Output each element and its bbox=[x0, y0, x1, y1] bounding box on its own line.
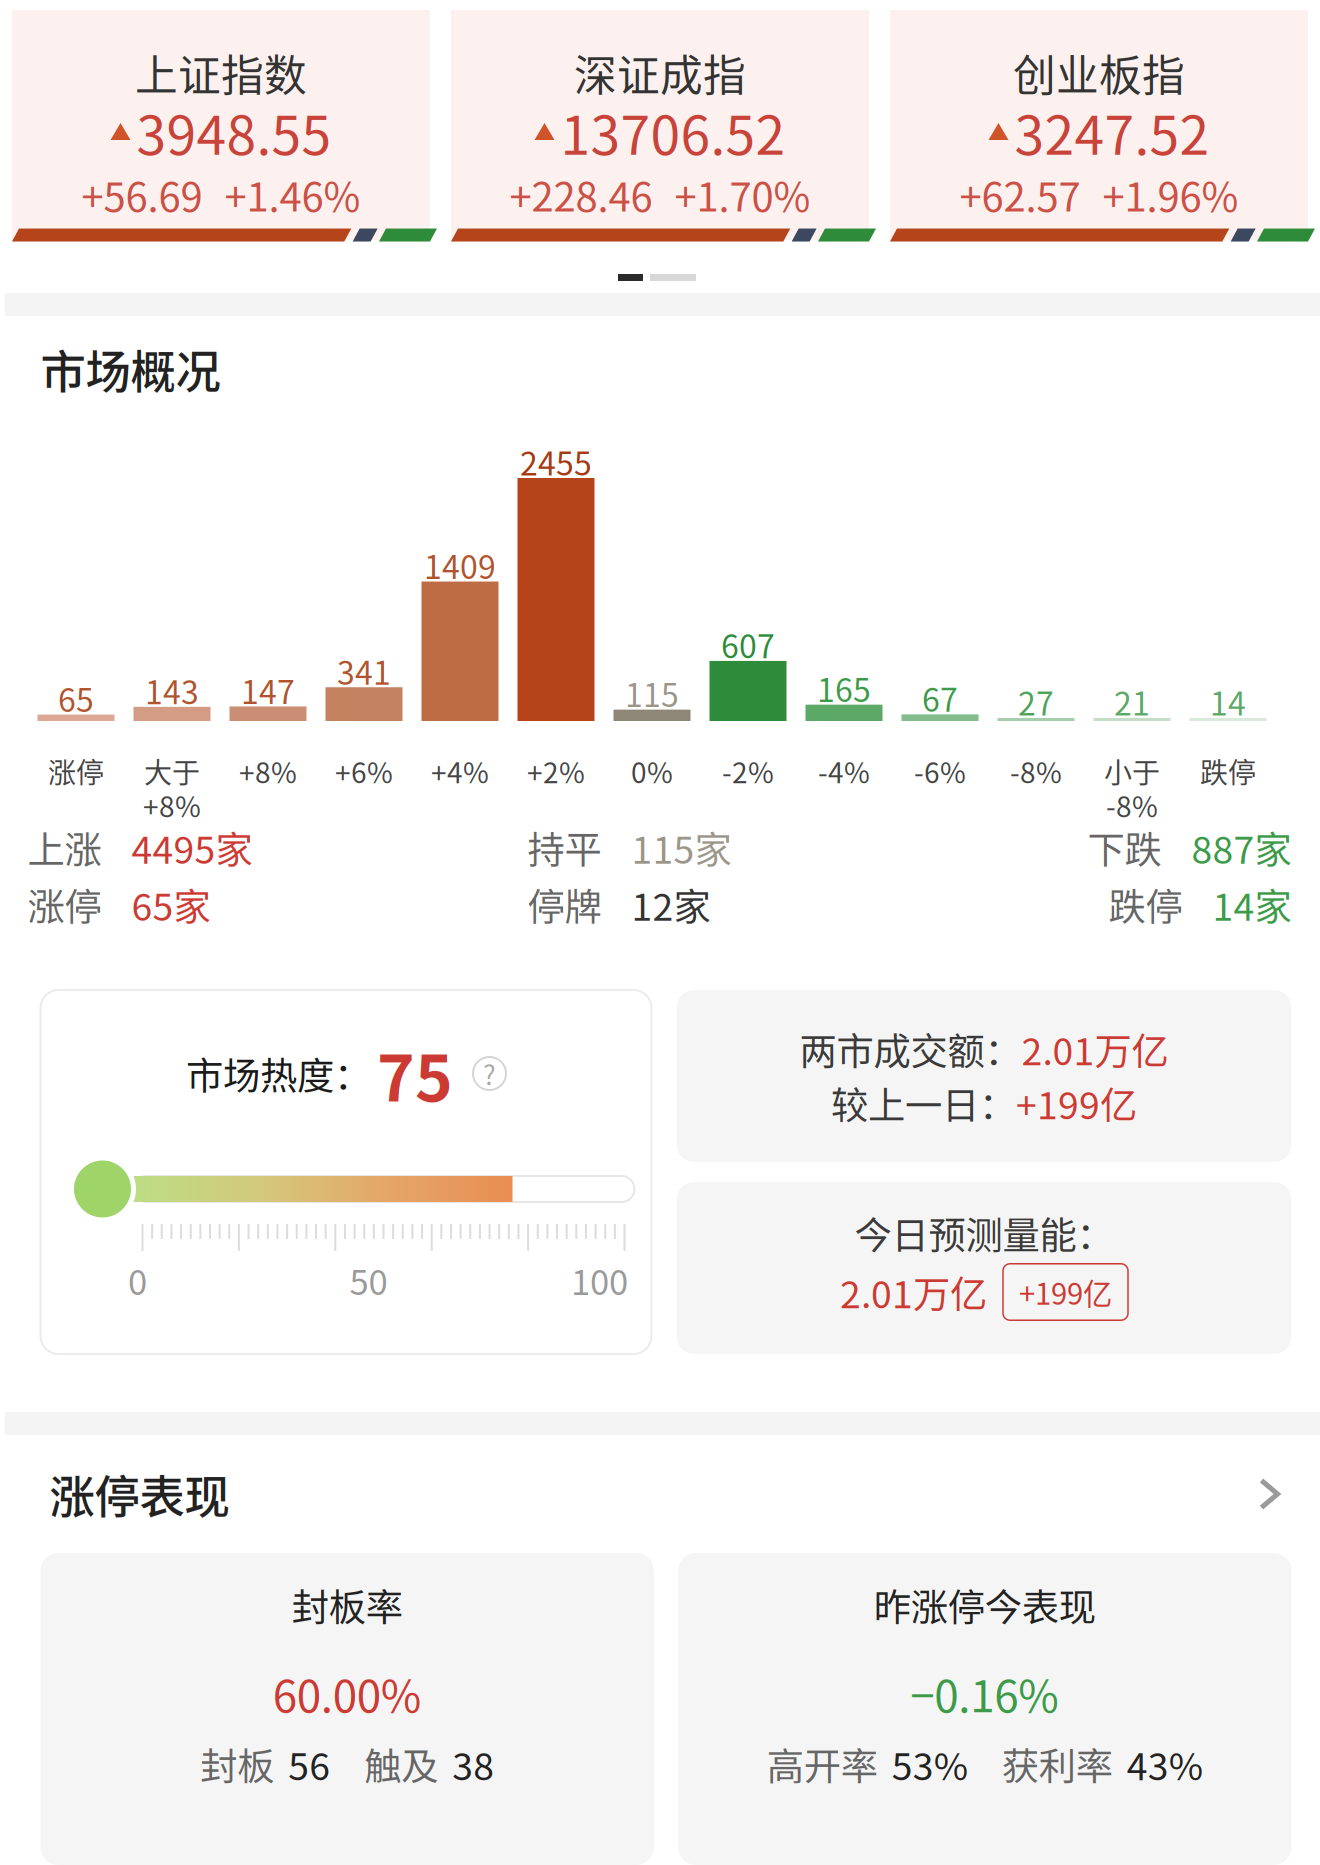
staticText: 147 bbox=[241, 667, 295, 713]
staticText: 887家 bbox=[1191, 820, 1291, 875]
staticText: 3948.55 bbox=[136, 93, 331, 170]
staticText: 0% bbox=[631, 751, 673, 791]
staticText: -8% bbox=[1106, 785, 1158, 825]
staticText: 60.00% bbox=[273, 1661, 422, 1725]
staticText: 涨停 bbox=[48, 751, 104, 791]
staticText: 创业板指 bbox=[1013, 42, 1185, 103]
staticText: +8% bbox=[239, 751, 297, 791]
staticText: 两市成交额： bbox=[799, 1022, 1021, 1076]
button[interactable]: 封板率 bbox=[40, 1553, 654, 1865]
staticText: +1.96% bbox=[1102, 165, 1238, 223]
staticText: 75 bbox=[377, 1027, 453, 1120]
staticText: 市场概况 bbox=[40, 336, 220, 402]
staticText: 12家 bbox=[631, 877, 710, 932]
staticText: 56 bbox=[288, 1737, 330, 1791]
staticText: +2% bbox=[527, 751, 585, 791]
staticText: 深证成指 bbox=[574, 42, 746, 103]
staticText: 封板率 bbox=[292, 1578, 403, 1632]
staticText: 小于 bbox=[1104, 751, 1160, 791]
staticText: 市场热度： bbox=[186, 1046, 371, 1101]
staticText: +8% bbox=[143, 785, 201, 825]
staticText: 大于 bbox=[144, 751, 200, 791]
staticText: +4% bbox=[431, 751, 489, 791]
staticText: 下跌 bbox=[1087, 820, 1161, 875]
staticText: +56.69 bbox=[81, 165, 202, 223]
staticText: 65 bbox=[58, 675, 94, 721]
staticText: 4495家 bbox=[131, 820, 252, 875]
staticText: 50 bbox=[349, 1255, 387, 1305]
staticText: 165 bbox=[817, 665, 871, 711]
staticText: 21 bbox=[1114, 678, 1150, 725]
staticText: 较上一日： bbox=[831, 1076, 1016, 1130]
staticText: +1.70% bbox=[674, 165, 810, 223]
staticText: 持平 bbox=[527, 820, 601, 875]
staticText: 1409 bbox=[424, 542, 496, 588]
staticText: 跌停 bbox=[1200, 751, 1256, 791]
staticText: -8% bbox=[1010, 751, 1062, 791]
staticText: 3247.52 bbox=[1014, 93, 1209, 170]
staticText: 涨停表现 bbox=[49, 1461, 229, 1527]
staticText: +6% bbox=[335, 751, 393, 791]
staticText: 341 bbox=[337, 648, 391, 694]
staticText: 115 bbox=[625, 670, 679, 716]
staticText: 65家 bbox=[131, 877, 210, 932]
staticText: 上涨 bbox=[27, 820, 101, 875]
staticText: 封板 bbox=[200, 1737, 274, 1791]
staticText: 100 bbox=[571, 1255, 628, 1305]
staticText: +199亿 bbox=[1019, 1271, 1112, 1313]
staticText: 2455 bbox=[520, 438, 592, 485]
staticText: −0.16% bbox=[910, 1661, 1059, 1725]
staticText: 115家 bbox=[631, 820, 731, 875]
staticText: ? bbox=[483, 1054, 496, 1093]
staticText: 2.01万亿 bbox=[840, 1265, 987, 1319]
staticText: 2.01万亿 bbox=[1021, 1022, 1168, 1076]
button[interactable]: 上证指数 bbox=[12, 10, 430, 240]
staticText: 今日预测量能： bbox=[854, 1206, 1113, 1260]
staticText: 143 bbox=[145, 667, 199, 713]
staticText: +1.46% bbox=[224, 165, 360, 223]
staticText: 高开率 bbox=[767, 1737, 878, 1791]
staticText: 停牌 bbox=[527, 877, 601, 932]
staticText: 13706.52 bbox=[560, 93, 785, 170]
staticText: +228.46 bbox=[509, 165, 652, 223]
staticText: 涨停 bbox=[27, 877, 101, 932]
staticText: -2% bbox=[722, 751, 774, 791]
staticText: 14 bbox=[1210, 678, 1246, 725]
staticText: 跌停 bbox=[1108, 877, 1182, 932]
staticText: +62.57 bbox=[959, 165, 1080, 223]
staticText: +199亿 bbox=[1016, 1076, 1137, 1130]
staticText: 0 bbox=[128, 1255, 147, 1305]
staticText: 上证指数 bbox=[135, 42, 307, 103]
button[interactable]: 涨停表现 bbox=[4, 1435, 1320, 1553]
staticText: 27 bbox=[1018, 678, 1054, 725]
staticText: 607 bbox=[721, 621, 775, 668]
staticText: 昨涨停今表现 bbox=[874, 1578, 1096, 1632]
staticText: 触及 bbox=[364, 1737, 438, 1791]
staticText: 38 bbox=[452, 1737, 494, 1791]
button[interactable]: 创业板指 bbox=[890, 10, 1308, 240]
staticText: 43% bbox=[1127, 1737, 1203, 1791]
staticText: 53% bbox=[892, 1737, 968, 1791]
staticText: 14家 bbox=[1212, 877, 1291, 932]
button[interactable]: 昨涨停今表现 bbox=[678, 1553, 1291, 1865]
staticText: 获利率 bbox=[1002, 1737, 1113, 1791]
staticText: -6% bbox=[914, 751, 966, 791]
staticText: 67 bbox=[922, 675, 958, 721]
button[interactable]: 深证成指 bbox=[451, 10, 869, 240]
staticText: -4% bbox=[818, 751, 870, 791]
